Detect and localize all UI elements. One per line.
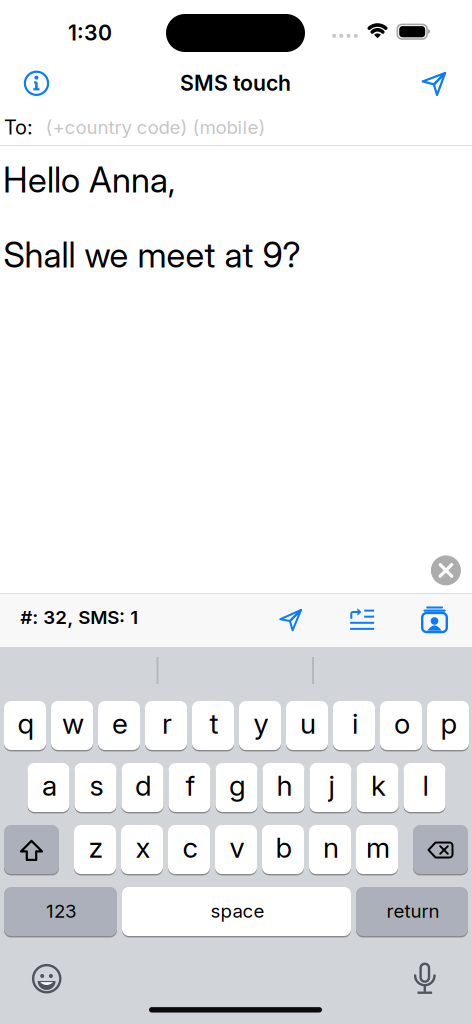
button[interactable]: return (356, 887, 468, 936)
button[interactable]: Send (278, 607, 304, 633)
button[interactable]: b (262, 825, 304, 874)
staticText: SMS touch (180, 70, 291, 96)
button[interactable]: k (356, 763, 398, 812)
staticText: j (328, 769, 334, 802)
button[interactable]: 123 (4, 887, 117, 936)
staticText: o (394, 707, 410, 740)
button[interactable]: u (286, 701, 328, 750)
button[interactable]: n (309, 825, 351, 874)
button[interactable]: e (98, 701, 140, 750)
button[interactable]: i (333, 701, 375, 750)
button[interactable]: j (309, 763, 351, 812)
staticText: m (366, 831, 390, 864)
button[interactable]: t (192, 701, 234, 750)
button[interactable]: Shift (4, 825, 59, 874)
staticText: 1:30 (68, 20, 112, 45)
button[interactable]: Info (22, 69, 50, 97)
button[interactable]: Send (417, 67, 451, 101)
staticText: c (182, 831, 197, 864)
button[interactable]: h (262, 763, 304, 812)
staticText: k (371, 769, 386, 802)
staticText: 123 (46, 900, 77, 922)
button[interactable]: c (168, 825, 210, 874)
staticText: x (135, 831, 150, 864)
button[interactable]: Insert template (348, 606, 376, 634)
button[interactable]: f (168, 763, 210, 812)
staticText: u (300, 707, 316, 740)
staticText: To: (4, 115, 33, 139)
staticText: i (352, 707, 358, 740)
staticText: q (17, 707, 34, 740)
staticText: Hello Anna, (3, 159, 176, 201)
staticText: e (112, 707, 128, 740)
staticText: v (229, 831, 244, 864)
staticText: g (229, 769, 246, 802)
button[interactable]: z (74, 825, 116, 874)
staticText: h (276, 769, 292, 802)
staticText: s (89, 769, 103, 802)
button[interactable]: Dictate (408, 961, 442, 995)
button[interactable]: p (427, 701, 469, 750)
staticText: a (42, 769, 57, 802)
button[interactable]: To: phone number (0, 106, 472, 146)
staticText: r (162, 707, 172, 740)
staticText: y (253, 707, 268, 740)
button[interactable]: space (122, 887, 351, 936)
staticText: b (275, 831, 292, 864)
button[interactable]: w (51, 701, 93, 750)
staticText: #: 32, SMS: 1 (20, 606, 138, 628)
staticText: d (135, 769, 152, 802)
button[interactable]: Dismiss keyboard (431, 555, 461, 585)
staticText: n (323, 831, 339, 864)
button[interactable]: s (74, 763, 116, 812)
button[interactable]: a (27, 763, 69, 812)
staticText: t (209, 707, 218, 740)
button[interactable]: Delete (413, 825, 468, 874)
button[interactable]: Emoji (30, 962, 64, 996)
button[interactable]: d (121, 763, 163, 812)
button[interactable]: y (239, 701, 281, 750)
button[interactable]: v (215, 825, 257, 874)
staticText: z (88, 831, 103, 864)
staticText: p (440, 707, 457, 740)
button[interactable]: g (215, 763, 257, 812)
button[interactable]: l (403, 763, 445, 812)
staticText: return (386, 900, 439, 922)
staticText: w (62, 707, 84, 740)
staticText: l (422, 769, 428, 802)
button[interactable]: Contacts (420, 606, 448, 634)
staticText: space (210, 900, 264, 922)
button[interactable]: o (380, 701, 422, 750)
button[interactable]: r (145, 701, 187, 750)
button[interactable]: x (121, 825, 163, 874)
staticText: f (185, 769, 195, 802)
button[interactable]: q (4, 701, 46, 750)
button[interactable]: m (356, 825, 398, 874)
staticText: (+country code) (mobile) (45, 116, 265, 138)
staticText: Shall we meet at 9? (3, 234, 300, 276)
